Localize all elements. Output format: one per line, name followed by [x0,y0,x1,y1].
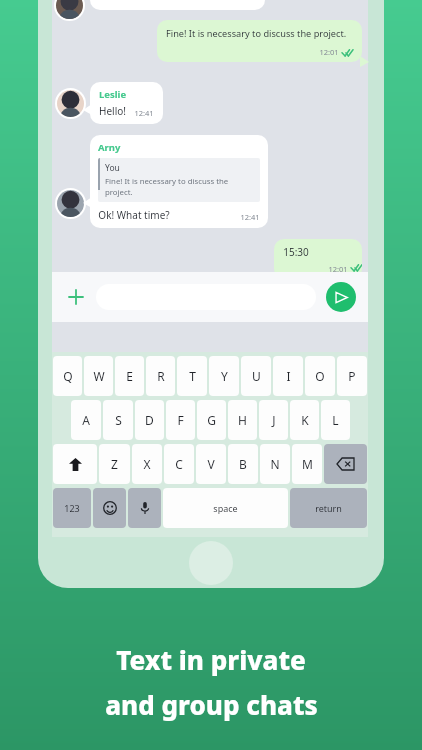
button[interactable]: O [305,356,335,396]
staticText: T [189,368,196,384]
staticText: H [238,412,247,428]
button[interactable]: Emoji [93,488,126,528]
button[interactable]: U [241,356,271,396]
staticText: Ok! What time? [98,208,170,222]
staticText: Y [221,368,228,384]
staticText: M [302,456,313,472]
button[interactable]: I [273,356,303,396]
button[interactable]: A [71,400,101,440]
button[interactable]: Home [189,541,233,585]
button[interactable]: Attach [64,285,88,309]
staticText: 12:41 [134,108,154,118]
staticText: S [115,412,122,428]
button[interactable]: H [228,400,257,440]
staticText: 123 [64,502,80,514]
staticText: E [126,368,133,384]
button[interactable]: Send [326,282,356,312]
button[interactable]: C [164,444,194,484]
staticText: R [157,368,165,384]
button[interactable]: N [260,444,290,484]
staticText: Hello! [99,104,126,118]
button[interactable]: R [146,356,175,396]
button[interactable]: F [166,400,195,440]
button[interactable]: P [337,356,367,396]
staticText: G [207,412,216,428]
staticText: D [145,412,154,428]
button[interactable]: Y [209,356,239,396]
button[interactable]: S [103,400,133,440]
staticText: return [315,502,342,514]
button[interactable]: J [259,400,288,440]
button[interactable]: Arny [90,135,268,228]
button[interactable]: Q [53,356,82,396]
staticText: A [82,412,90,428]
button[interactable]: return [290,488,367,528]
button[interactable]: X [132,444,162,484]
staticText: Arny [98,141,121,154]
staticText: Fine! It is necessary to discuss the pro… [166,27,347,40]
staticText: Text in private [116,642,306,677]
button[interactable]: 15:30 [274,239,362,279]
staticText: K [301,412,309,428]
button[interactable]: V [196,444,226,484]
button[interactable]: B [228,444,258,484]
button[interactable]: D [135,400,164,440]
button[interactable] [90,0,265,10]
staticText: and group chats [105,687,318,722]
staticText: C [175,456,183,472]
button[interactable]: Leslie [90,82,163,124]
staticText: I [286,368,291,384]
staticText: space [213,502,238,514]
staticText: J [272,412,276,428]
staticText: 12:41 [240,212,260,222]
staticText: B [239,456,247,472]
button[interactable]: T [177,356,207,396]
staticText: W [93,368,105,384]
staticText: Z [111,456,118,472]
staticText: Q [63,368,73,384]
staticText: N [270,456,280,472]
button[interactable]: M [292,444,322,484]
staticText: P [348,368,356,384]
button[interactable]: 123 [53,488,91,528]
staticText: 12:01 [328,264,348,274]
staticText: You [105,162,120,174]
staticText: O [315,368,325,384]
button[interactable]: K [290,400,319,440]
button[interactable]: Backspace [324,444,367,484]
button[interactable]: Shift [53,444,97,484]
staticText: Leslie [99,88,127,101]
button[interactable]: E [115,356,144,396]
staticText: 12:01 [319,47,339,57]
staticText: Fine! It is necessary to discuss the pro… [105,176,256,198]
button[interactable]: Z [99,444,130,484]
button[interactable]: space [163,488,288,528]
staticText: U [252,368,261,384]
staticText: V [207,456,215,472]
staticText: X [143,456,151,472]
button[interactable]: G [197,400,226,440]
button[interactable]: Voice input [128,488,161,528]
staticText: F [177,412,184,428]
staticText: 15:30 [283,245,309,259]
staticText: L [332,412,339,428]
button[interactable]: W [84,356,113,396]
button[interactable]: L [321,400,350,440]
button[interactable]: Fine! It is necessary to discuss the pro… [157,20,362,62]
